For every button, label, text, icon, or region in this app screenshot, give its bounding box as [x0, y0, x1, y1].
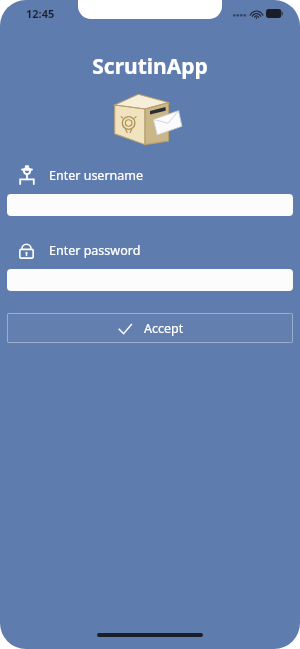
button[interactable]	[7, 194, 293, 216]
other: Password	[17, 241, 36, 260]
other: Username	[17, 165, 37, 185]
staticText: Enter password	[49, 242, 141, 259]
staticText: Accept	[144, 320, 184, 337]
button[interactable]	[7, 269, 293, 291]
staticText: 12:45	[26, 6, 55, 21]
button[interactable]: Accept	[7, 313, 293, 343]
other: Ballot box logo	[108, 87, 192, 147]
staticText: ScrutinApp	[0, 52, 300, 81]
staticText: Enter username	[49, 167, 144, 184]
